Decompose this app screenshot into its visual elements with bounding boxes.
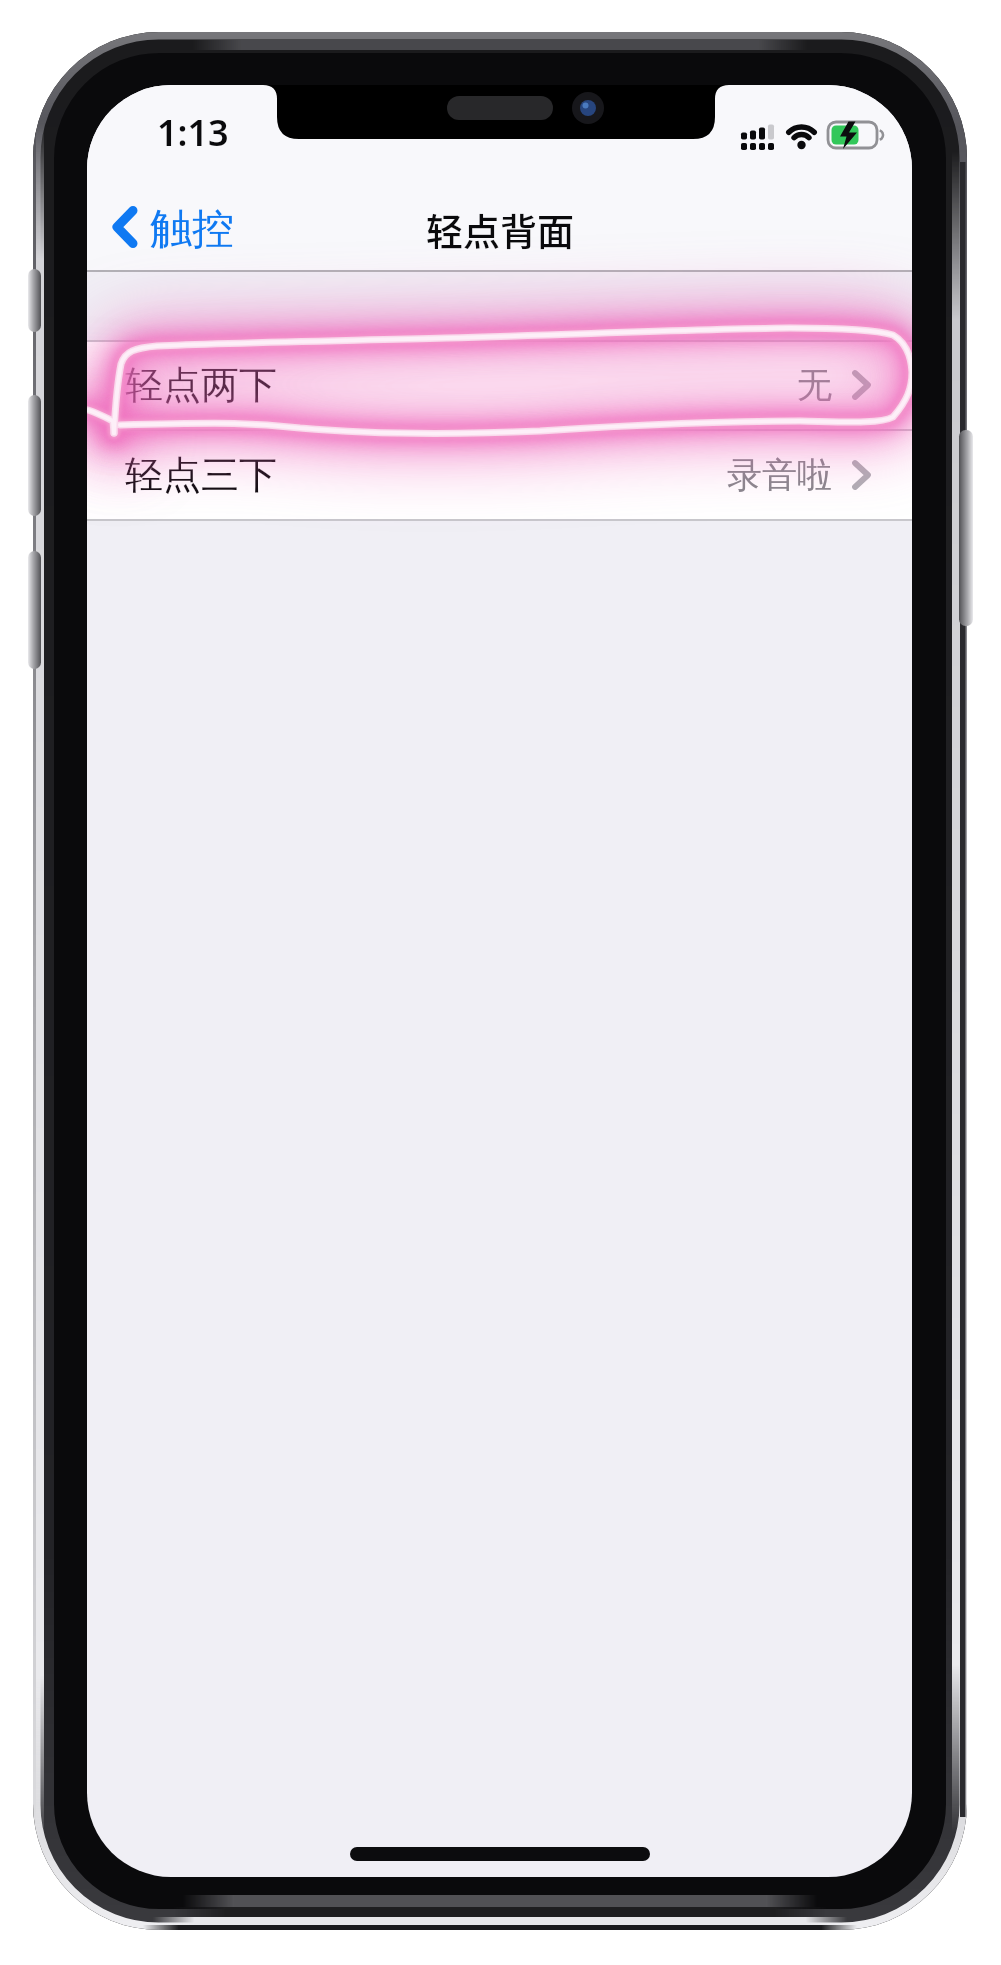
staticText: 轻点两下 — [125, 361, 277, 409]
staticText: 轻点三下 — [125, 451, 277, 499]
staticText: 1:13 — [157, 108, 229, 157]
button[interactable]: 轻点三下 — [87, 431, 912, 519]
staticText: 录音啦 — [727, 453, 832, 497]
button[interactable]: 触控 — [112, 203, 234, 251]
staticText: 无 — [797, 363, 832, 407]
button[interactable]: 轻点两下 — [87, 341, 912, 429]
staticText: 轻点背面 — [426, 203, 574, 251]
staticText: 触控 — [150, 203, 234, 251]
